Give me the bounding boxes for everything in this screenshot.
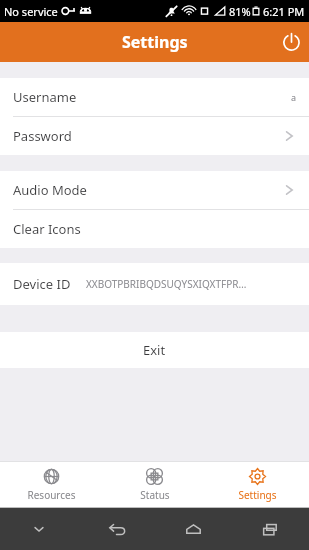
staticText: Username (13, 88, 77, 106)
button[interactable]: Back (78, 508, 155, 550)
button[interactable]: Audio Mode (0, 171, 309, 209)
staticText: Password (13, 127, 72, 145)
staticText: Status (140, 488, 170, 502)
staticText: XXBOTPBRIBQDSUQYSXIQXTFPR… (86, 277, 247, 291)
button[interactable]: Device ID (0, 263, 309, 305)
staticText: Clear Icons (13, 220, 81, 238)
staticText: Settings (238, 488, 277, 502)
button[interactable]: Username (0, 78, 309, 116)
staticText: Audio Mode (13, 181, 87, 199)
button[interactable]: Settings (206, 462, 309, 507)
button[interactable]: Home (155, 508, 232, 550)
button[interactable]: Hide keyboard (0, 508, 78, 550)
button[interactable]: Exit (0, 332, 309, 368)
button[interactable]: Power off (273, 24, 309, 60)
staticText: 6:21 PM (263, 4, 305, 19)
button[interactable]: Resources (0, 462, 103, 507)
staticText: 81% (229, 4, 251, 19)
staticText: Settings (122, 31, 188, 53)
button[interactable]: Password (0, 117, 309, 155)
staticText: No service (4, 4, 58, 19)
staticText: a (291, 91, 297, 103)
button[interactable]: Status (103, 462, 206, 507)
staticText: Device ID (13, 275, 71, 293)
button[interactable]: Clear Icons (0, 210, 309, 248)
staticText: Exit (143, 341, 166, 359)
staticText: Resources (27, 488, 76, 502)
button[interactable]: Recent apps (232, 508, 309, 550)
